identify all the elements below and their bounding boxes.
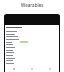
button[interactable]: Home	[5, 66, 23, 71]
staticText: Wearables	[21, 2, 44, 8]
button[interactable]: Devices	[23, 66, 41, 71]
button[interactable]: Settings	[41, 66, 59, 71]
